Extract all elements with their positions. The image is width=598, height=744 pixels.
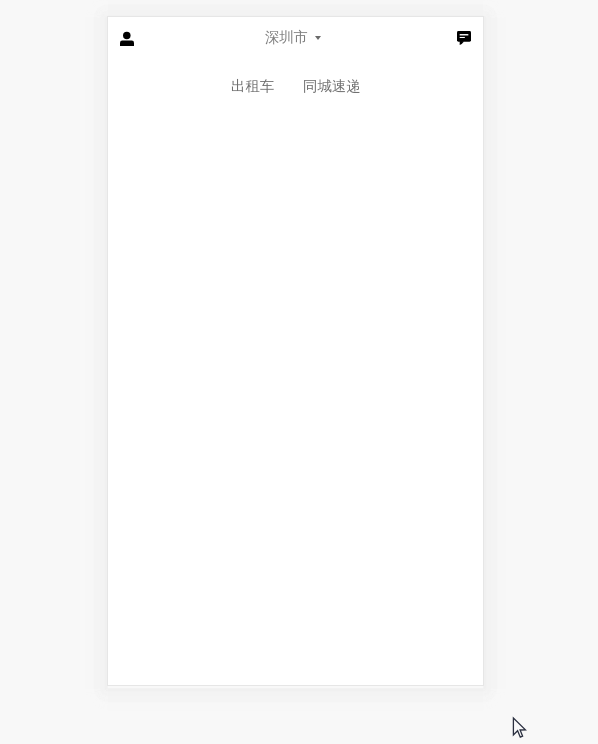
staticText: 深圳市 — [265, 28, 309, 46]
button[interactable]: Messages — [446, 20, 482, 56]
button[interactable]: Select city — [253, 20, 333, 54]
staticText: 同城速递 — [303, 77, 361, 95]
button[interactable]: Account — [109, 21, 145, 57]
button[interactable]: 出租车 — [217, 67, 289, 105]
staticText: 出租车 — [231, 77, 275, 95]
button[interactable]: 同城速递 — [289, 67, 375, 105]
